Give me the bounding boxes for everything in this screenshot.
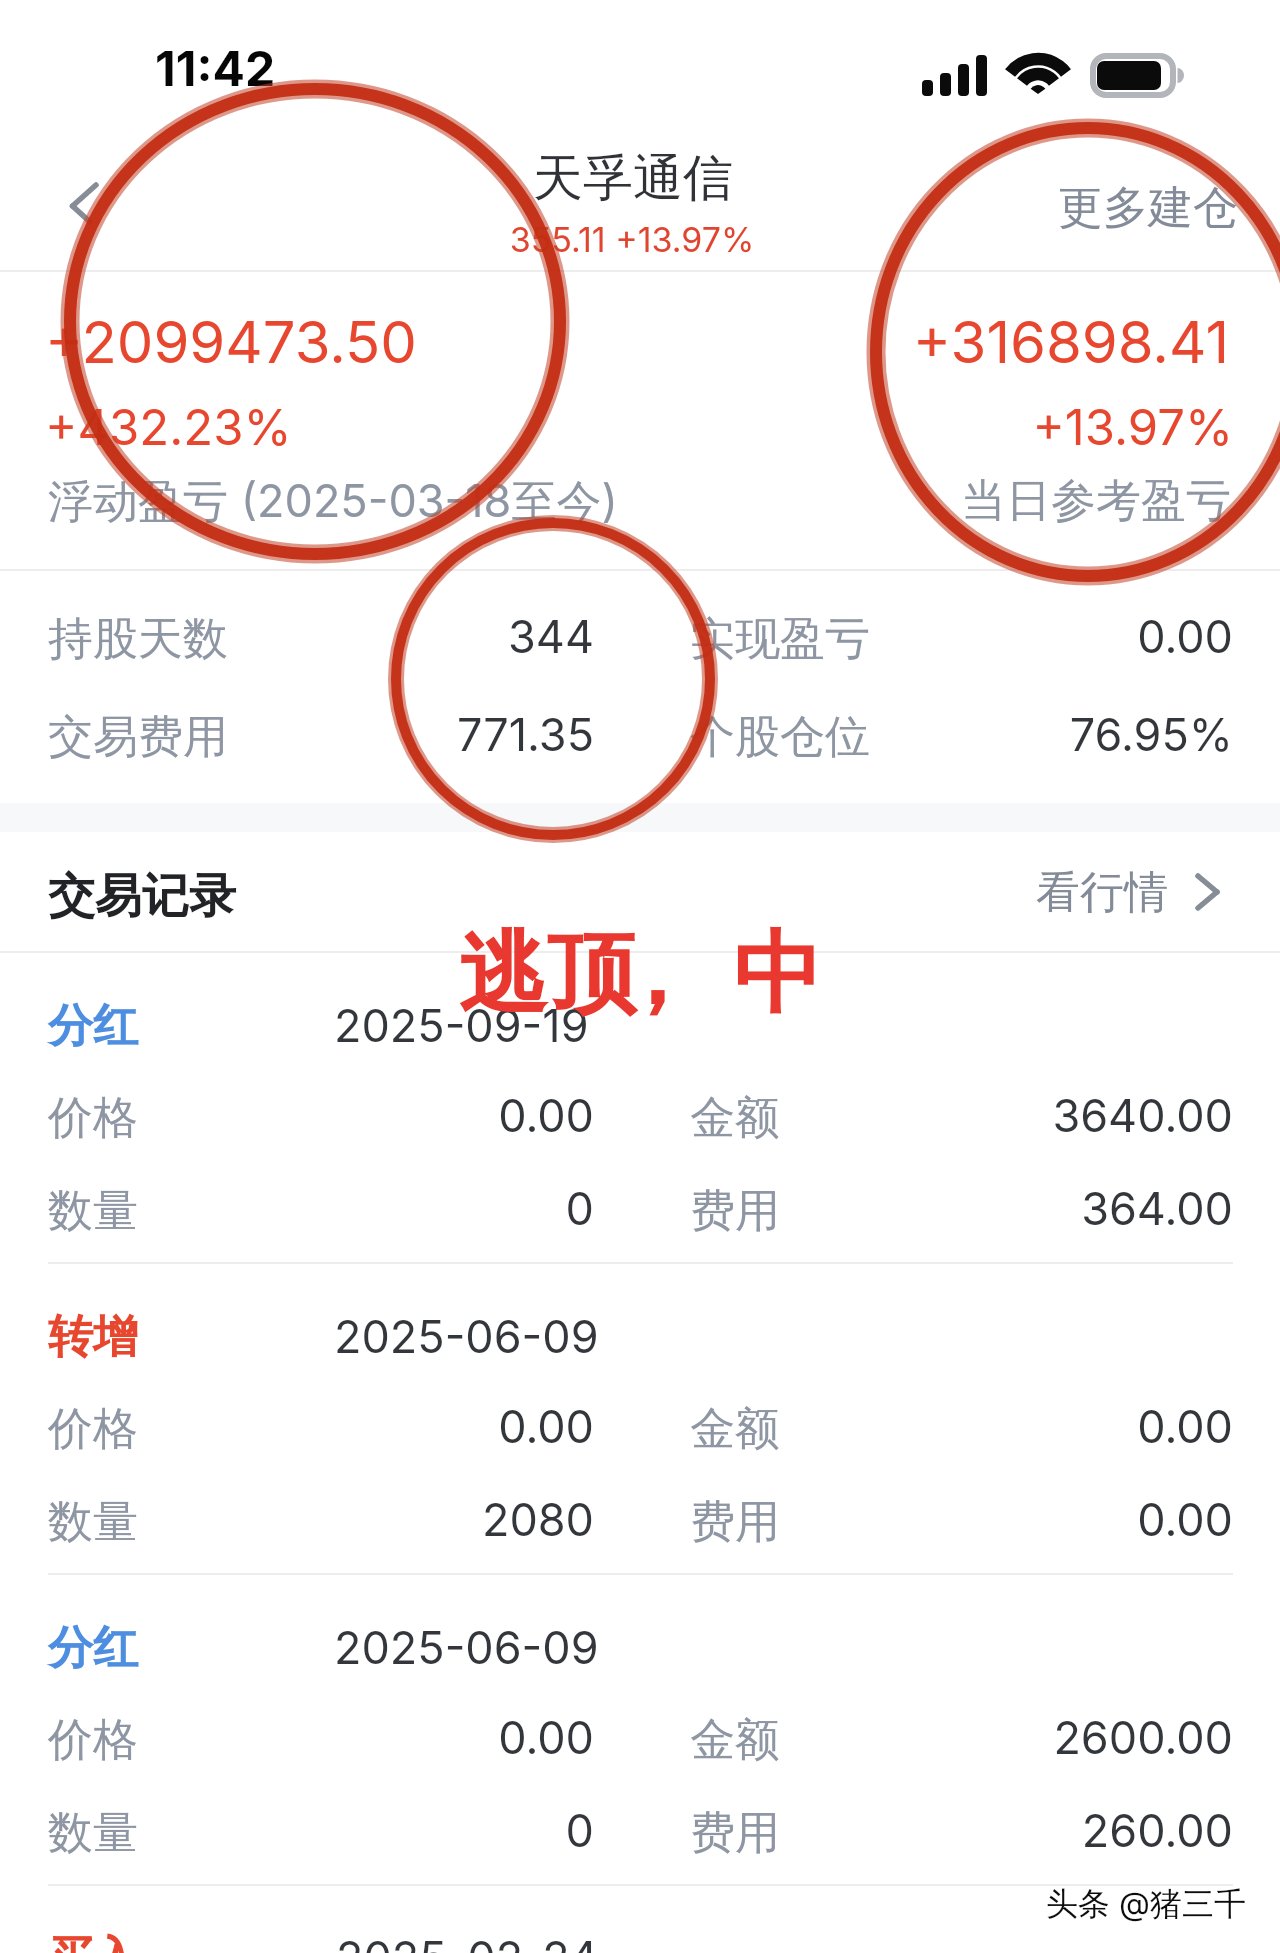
staticText: 买入 — [48, 1930, 138, 1953]
staticText: 0.00 — [713, 1492, 1233, 1546]
staticText: 当日参考盈亏 — [331, 473, 1231, 530]
staticText: 持股天数 — [48, 611, 228, 668]
staticText: 金额 — [690, 1401, 780, 1458]
staticText: 2080 — [74, 1492, 594, 1546]
staticText: 0.00 — [74, 1088, 594, 1142]
staticText: +13.97% — [333, 398, 1233, 457]
staticText: 355.11 +13.97% — [0, 219, 1272, 260]
staticText: 260.00 — [713, 1803, 1233, 1857]
staticText: 0.00 — [74, 1399, 594, 1453]
staticText: 中 — [733, 918, 822, 1030]
button[interactable]: Back — [44, 160, 128, 250]
staticText: 数量 — [48, 1183, 138, 1240]
staticText: 分红 — [48, 1620, 138, 1677]
staticText: 费用 — [690, 1805, 780, 1862]
staticText: 价格 — [48, 1401, 138, 1458]
staticText: 11:42 — [155, 39, 276, 97]
staticText: 交易费用 — [48, 709, 228, 766]
button[interactable]: 转增 — [0, 1262, 1280, 1573]
staticText: 数量 — [48, 1805, 138, 1862]
staticText: +432.23% — [45, 398, 292, 457]
staticText: 浮动盈亏 (2025-03-18至今) — [48, 473, 618, 530]
staticText: 0 — [74, 1803, 594, 1857]
staticText: 天孚通信 — [0, 147, 1273, 210]
button[interactable]: 更多建仓 — [1058, 180, 1238, 237]
staticText: 头条 @猪三千 — [1046, 1884, 1246, 1925]
staticText: 2025-09-19 — [334, 998, 589, 1052]
staticText: 看行情 — [1036, 865, 1168, 920]
staticText: 0 — [74, 1181, 594, 1235]
staticText: 费用 — [690, 1183, 780, 1240]
staticText: +316898.41 — [329, 307, 1229, 377]
staticText: 金额 — [690, 1712, 780, 1769]
staticText: 逃顶 — [458, 918, 636, 1030]
staticText: 2600.00 — [713, 1710, 1233, 1764]
staticText: 数量 — [48, 1494, 138, 1551]
staticText: 771.35 — [74, 707, 594, 761]
staticText: 2025-06-09 — [334, 1620, 599, 1674]
staticText: +2099473.50 — [45, 307, 417, 377]
staticText: 交易记录 — [48, 867, 236, 926]
staticText: 2025-06-09 — [334, 1309, 599, 1363]
button[interactable]: 看行情 — [1036, 858, 1222, 926]
staticText: 3640.00 — [713, 1088, 1233, 1142]
staticText: 0.00 — [713, 1399, 1233, 1453]
staticText: 价格 — [48, 1712, 138, 1769]
button[interactable]: 分红 — [0, 1573, 1280, 1884]
staticText: 更多建仓 — [1058, 180, 1238, 237]
staticText: 实现盈亏 — [690, 611, 870, 668]
staticText: 2025-02-24 — [336, 1930, 599, 1953]
staticText: 价格 — [48, 1090, 138, 1147]
staticText: 金额 — [690, 1090, 780, 1147]
staticText: 0.00 — [713, 609, 1233, 663]
staticText: 转增 — [48, 1309, 138, 1366]
staticText: 分红 — [48, 998, 138, 1055]
staticText: 344 — [74, 609, 594, 663]
staticText: 个股仓位 — [690, 709, 870, 766]
staticText: 费用 — [690, 1494, 780, 1551]
staticText: 76.95% — [713, 707, 1233, 761]
button[interactable]: 分红 — [0, 951, 1280, 1262]
staticText: ， — [611, 918, 700, 1030]
button[interactable]: 买入 — [0, 1884, 1280, 1953]
other: Status icons — [900, 40, 1200, 100]
staticText: 0.00 — [74, 1710, 594, 1764]
staticText: 364.00 — [713, 1181, 1233, 1235]
